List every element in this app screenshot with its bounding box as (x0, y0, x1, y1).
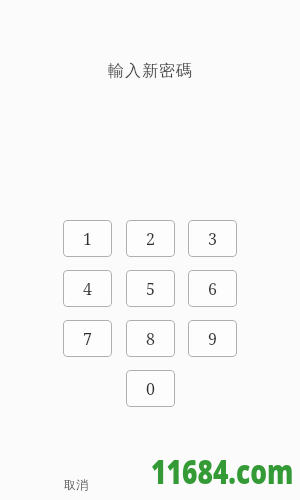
button[interactable]: 6 (188, 270, 237, 307)
staticText: 6 (208, 278, 217, 300)
staticText: 11684.com (151, 449, 294, 494)
staticText: 5 (146, 278, 155, 300)
button[interactable]: 7 (63, 320, 112, 357)
button[interactable]: 5 (126, 270, 175, 307)
staticText: 7 (83, 328, 92, 350)
staticText: 輸入新密碼 (108, 61, 193, 81)
button[interactable]: 9 (188, 320, 237, 357)
button[interactable]: 8 (126, 320, 175, 357)
button[interactable]: 1 (63, 220, 112, 257)
staticText: 9 (208, 328, 217, 350)
button[interactable]: 0 (126, 370, 175, 407)
button[interactable]: 2 (126, 220, 175, 257)
staticText: 1 (83, 228, 92, 250)
staticText: 3 (208, 228, 217, 250)
staticText: 8 (146, 328, 155, 350)
staticText: 4 (83, 278, 92, 300)
staticText: 0 (146, 378, 155, 400)
button[interactable]: 4 (63, 270, 112, 307)
button[interactable]: 3 (188, 220, 237, 257)
button[interactable]: 取消 (44, 470, 108, 498)
staticText: 取消 (64, 477, 88, 492)
staticText: 2 (146, 228, 155, 250)
